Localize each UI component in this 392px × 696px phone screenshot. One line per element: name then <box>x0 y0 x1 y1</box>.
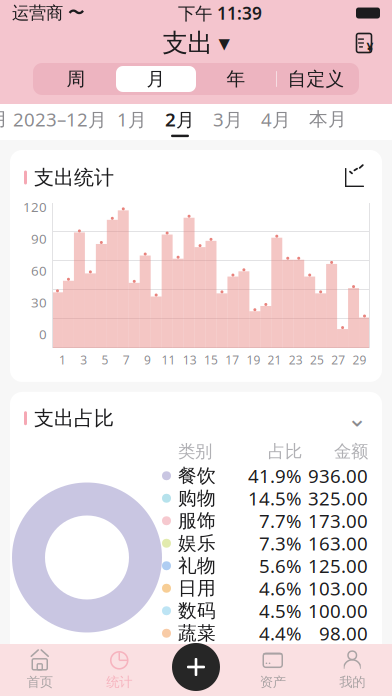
staticText: 2月 <box>165 107 195 132</box>
staticText: 5.6% <box>259 553 302 578</box>
button[interactable]: 礼物 <box>162 554 368 577</box>
staticText: 125.00 <box>308 553 368 578</box>
staticText: 资产 <box>260 674 286 690</box>
staticText: 下午 11:39 <box>178 1 262 24</box>
button[interactable]: 日用 <box>162 577 368 599</box>
staticText: 1月 <box>117 107 147 132</box>
staticText: 21 <box>268 352 282 368</box>
button[interactable]: 本月 <box>300 104 356 140</box>
staticText: 13 <box>183 352 197 368</box>
staticText: 11 <box>162 352 176 368</box>
staticText: 〜 <box>63 3 84 23</box>
staticText: 支出占比 <box>34 406 114 430</box>
staticText: 23 <box>289 352 303 368</box>
staticText: 29 <box>352 352 366 368</box>
staticText: ¥ <box>366 39 373 55</box>
button[interactable]: 统计 <box>79 644 159 696</box>
staticText: 周 <box>66 67 85 90</box>
staticText: 蔬菜 <box>178 622 216 645</box>
staticText: ⌄ <box>347 405 367 432</box>
staticText: 173.00 <box>308 508 368 533</box>
staticText: 4.4% <box>259 621 302 646</box>
button[interactable]: 月 <box>0 104 12 140</box>
staticText: 3月 <box>213 107 243 132</box>
staticText: 14.5% <box>248 486 302 511</box>
staticText: 我的 <box>339 674 365 690</box>
staticText: 金额 <box>334 441 368 462</box>
button[interactable]: 4月 <box>252 104 300 140</box>
staticText: 60 <box>31 262 47 279</box>
staticText: 类别 <box>178 441 212 462</box>
staticText: 19 <box>246 352 260 368</box>
staticText: 1 <box>59 352 66 368</box>
button[interactable]: 周 <box>36 66 116 92</box>
staticText: 本月 <box>309 108 347 131</box>
staticText: 支出 <box>162 27 212 58</box>
button[interactable]: 月 <box>116 66 196 92</box>
staticText: 9 <box>144 352 151 368</box>
button[interactable]: 支出 <box>154 23 237 62</box>
button[interactable]: 3月 <box>204 104 252 140</box>
staticText: 4.6% <box>259 576 302 601</box>
staticText: 27 <box>331 352 345 368</box>
staticText: 日用 <box>178 577 216 600</box>
button[interactable]: 账单明细 <box>344 26 384 59</box>
staticText: 4.5% <box>259 598 302 623</box>
staticText: 4月 <box>261 107 291 132</box>
staticText: 娱乐 <box>178 532 216 555</box>
staticText: 7.7% <box>259 508 302 533</box>
staticText: 17 <box>225 352 239 368</box>
staticText: 7 <box>123 352 130 368</box>
staticText: 餐饮 <box>178 464 216 487</box>
staticText: 90 <box>31 230 47 247</box>
button[interactable]: 服饰 <box>162 509 368 532</box>
button[interactable]: 切换图表 <box>341 164 368 191</box>
button[interactable]: 添加记账 <box>167 640 225 694</box>
staticText: 120 <box>23 198 47 216</box>
staticText: 3 <box>80 352 87 368</box>
button[interactable]: 蔬菜 <box>162 622 368 644</box>
staticText: 30 <box>31 293 47 311</box>
staticText: 100.00 <box>308 598 368 623</box>
staticText: 25 <box>310 352 324 368</box>
button[interactable]: 自定义 <box>276 66 356 92</box>
staticText: 购物 <box>178 487 216 510</box>
staticText: 0 <box>39 325 47 343</box>
staticText: 自定义 <box>287 67 344 90</box>
button[interactable]: 资产 <box>233 644 312 696</box>
staticText: 服饰 <box>178 509 216 532</box>
button[interactable]: 餐饮 <box>162 464 368 487</box>
button[interactable]: 1月 <box>108 104 156 140</box>
staticText: 礼物 <box>178 554 216 577</box>
button[interactable]: 首页 <box>0 644 79 696</box>
staticText: 7.3% <box>259 531 302 556</box>
button[interactable]: 2月 <box>156 104 204 140</box>
button[interactable]: 收起 <box>346 410 368 426</box>
staticText: 数码 <box>178 599 216 622</box>
button[interactable]: 年 <box>196 66 276 92</box>
button[interactable]: 娱乐 <box>162 532 368 554</box>
staticText: 325.00 <box>308 486 368 511</box>
staticText: 98.00 <box>319 621 368 646</box>
staticText: 统计 <box>106 674 132 690</box>
staticText: 936.00 <box>308 463 368 488</box>
staticText: 月 <box>0 108 8 131</box>
staticText: 41.9% <box>248 463 302 488</box>
staticText: 占比 <box>268 441 302 462</box>
button[interactable]: 数码 <box>162 599 368 622</box>
staticText: 5 <box>101 352 108 368</box>
staticText: 首页 <box>27 674 53 690</box>
button[interactable]: 购物 <box>162 487 368 509</box>
staticText: 163.00 <box>308 531 368 556</box>
staticText: 运营商 <box>12 2 63 24</box>
button[interactable]: 2023–12月 <box>12 104 108 140</box>
button[interactable]: 我的 <box>312 644 392 696</box>
staticText: 月 <box>146 67 165 90</box>
staticText: 年 <box>226 67 245 90</box>
staticText: 支出统计 <box>34 165 114 190</box>
staticText: 103.00 <box>308 576 368 601</box>
staticText: ▾ <box>218 30 229 56</box>
staticText: 15 <box>204 352 218 368</box>
staticText: 2023–12月 <box>13 107 107 132</box>
